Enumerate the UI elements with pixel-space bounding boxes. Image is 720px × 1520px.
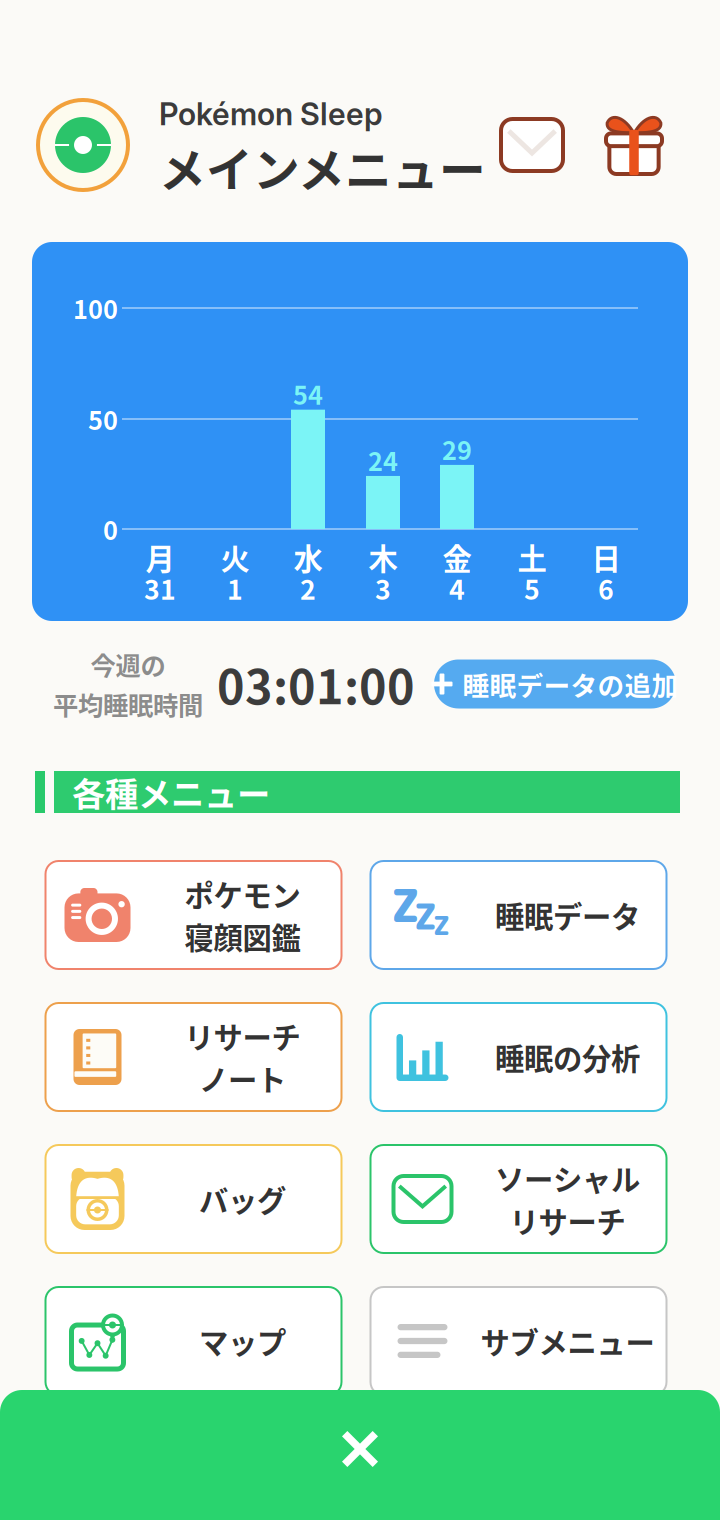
staticText: マップ — [199, 1320, 286, 1362]
staticText: 50 — [88, 401, 118, 437]
staticText: 1 — [227, 569, 243, 607]
staticText: 4 — [449, 569, 465, 607]
staticText: 0 — [103, 511, 118, 547]
staticText: 2 — [300, 569, 316, 607]
button[interactable]: バッグ — [45, 1145, 341, 1253]
staticText: 3 — [375, 569, 391, 607]
staticText: 木 — [368, 536, 397, 578]
staticText: 日 — [591, 536, 620, 578]
button[interactable]: 睡眠の分析 — [370, 1003, 666, 1111]
staticText: 平均睡眠時間 — [53, 685, 203, 722]
staticText: 睡眠の分析 — [495, 1036, 640, 1078]
staticText: 火 — [220, 536, 249, 578]
staticText: 月 — [145, 536, 174, 578]
staticText: ソーシャル — [495, 1156, 640, 1199]
button[interactable]: Close — [0, 1390, 720, 1520]
staticText: 睡眠データ — [495, 894, 640, 936]
staticText: 100 — [73, 290, 118, 326]
button[interactable]: サブメニュー — [370, 1287, 666, 1395]
button[interactable]: ソーシャル — [370, 1145, 666, 1253]
staticText: 24 — [368, 442, 398, 478]
staticText: リサーチ — [509, 1199, 625, 1241]
staticText: 水 — [293, 536, 322, 578]
button[interactable]: マップ — [45, 1287, 341, 1395]
staticText: 各種メニュー — [72, 768, 270, 816]
staticText: 6 — [598, 569, 614, 607]
staticText: ノート — [199, 1057, 286, 1099]
button[interactable]: リサーチ — [45, 1003, 341, 1111]
staticText: 54 — [293, 375, 323, 412]
staticText: 寝顔図鑑 — [184, 915, 300, 957]
staticText: Pokémon Sleep — [159, 96, 383, 133]
staticText: 金 — [442, 536, 471, 578]
button[interactable]: Gifts — [594, 105, 674, 185]
staticText: 29 — [442, 431, 472, 467]
staticText: リサーチ — [184, 1014, 300, 1057]
staticText: Z — [433, 906, 450, 944]
button[interactable]: ポケモン — [45, 861, 341, 969]
button[interactable]: Z — [370, 861, 666, 969]
staticText: 03:01:00 — [217, 650, 415, 718]
staticText: 土 — [517, 536, 546, 578]
staticText: 睡眠データの追加 — [462, 665, 678, 703]
staticText: バッグ — [199, 1178, 286, 1220]
staticText: Z — [391, 873, 420, 937]
staticText: 5 — [524, 569, 540, 607]
staticText: サブメニュー — [480, 1320, 654, 1362]
staticText: Z — [414, 891, 437, 941]
button[interactable]: Mail — [492, 105, 572, 185]
staticText: ポケモン — [184, 872, 300, 915]
button[interactable]: 睡眠データの追加 — [434, 659, 676, 708]
staticText: メインメニュー — [159, 133, 486, 200]
staticText: 今週の — [90, 646, 165, 682]
staticText: 31 — [144, 569, 176, 607]
